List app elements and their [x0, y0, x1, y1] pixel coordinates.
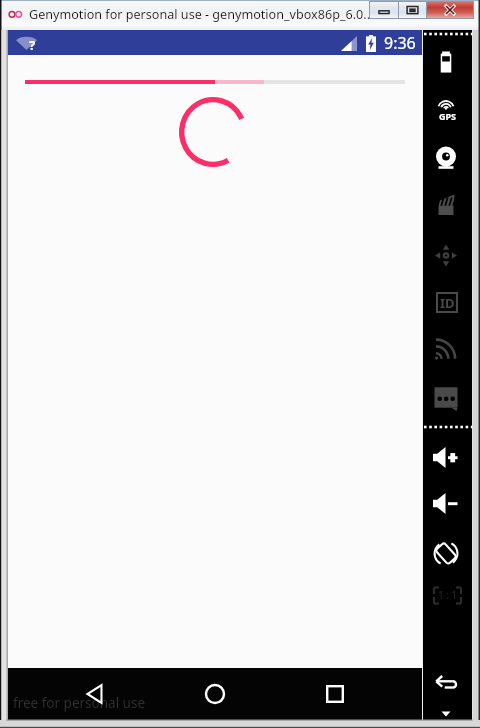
button[interactable]: Volume down [433, 493, 459, 514]
staticText: 9:36 [384, 32, 416, 54]
button[interactable]: Back [432, 673, 460, 693]
button[interactable]: Close window [427, 2, 473, 18]
button[interactable]: Rotate screen [434, 541, 458, 566]
button[interactable]: Record video [435, 192, 457, 218]
staticText: free for personal use [13, 694, 146, 712]
button[interactable]: Identifiers [436, 292, 458, 313]
button[interactable]: SMS [434, 385, 458, 411]
staticText: Genymotion for personal use - genymotion… [29, 6, 374, 23]
button[interactable]: Virtual sensors [434, 244, 458, 267]
button[interactable]: GPS signal [439, 100, 453, 110]
button[interactable]: Network [434, 336, 458, 360]
staticText: ID [440, 294, 455, 312]
button[interactable]: Battery [434, 50, 458, 74]
staticText: GPS [439, 110, 457, 122]
button[interactable]: Back [75, 668, 115, 720]
staticText: 1 : 1 [438, 588, 458, 602]
button[interactable]: Camera [435, 144, 457, 170]
button[interactable]: Recents [315, 668, 355, 720]
button[interactable]: Window button [370, 2, 398, 18]
button[interactable]: Home [195, 668, 235, 720]
button[interactable]: Scale 1 to 1 [434, 583, 461, 607]
staticText: ? [29, 36, 36, 54]
button[interactable]: More options [441, 711, 451, 717]
button[interactable]: Volume up [433, 447, 459, 468]
button[interactable]: Window button [399, 2, 426, 18]
